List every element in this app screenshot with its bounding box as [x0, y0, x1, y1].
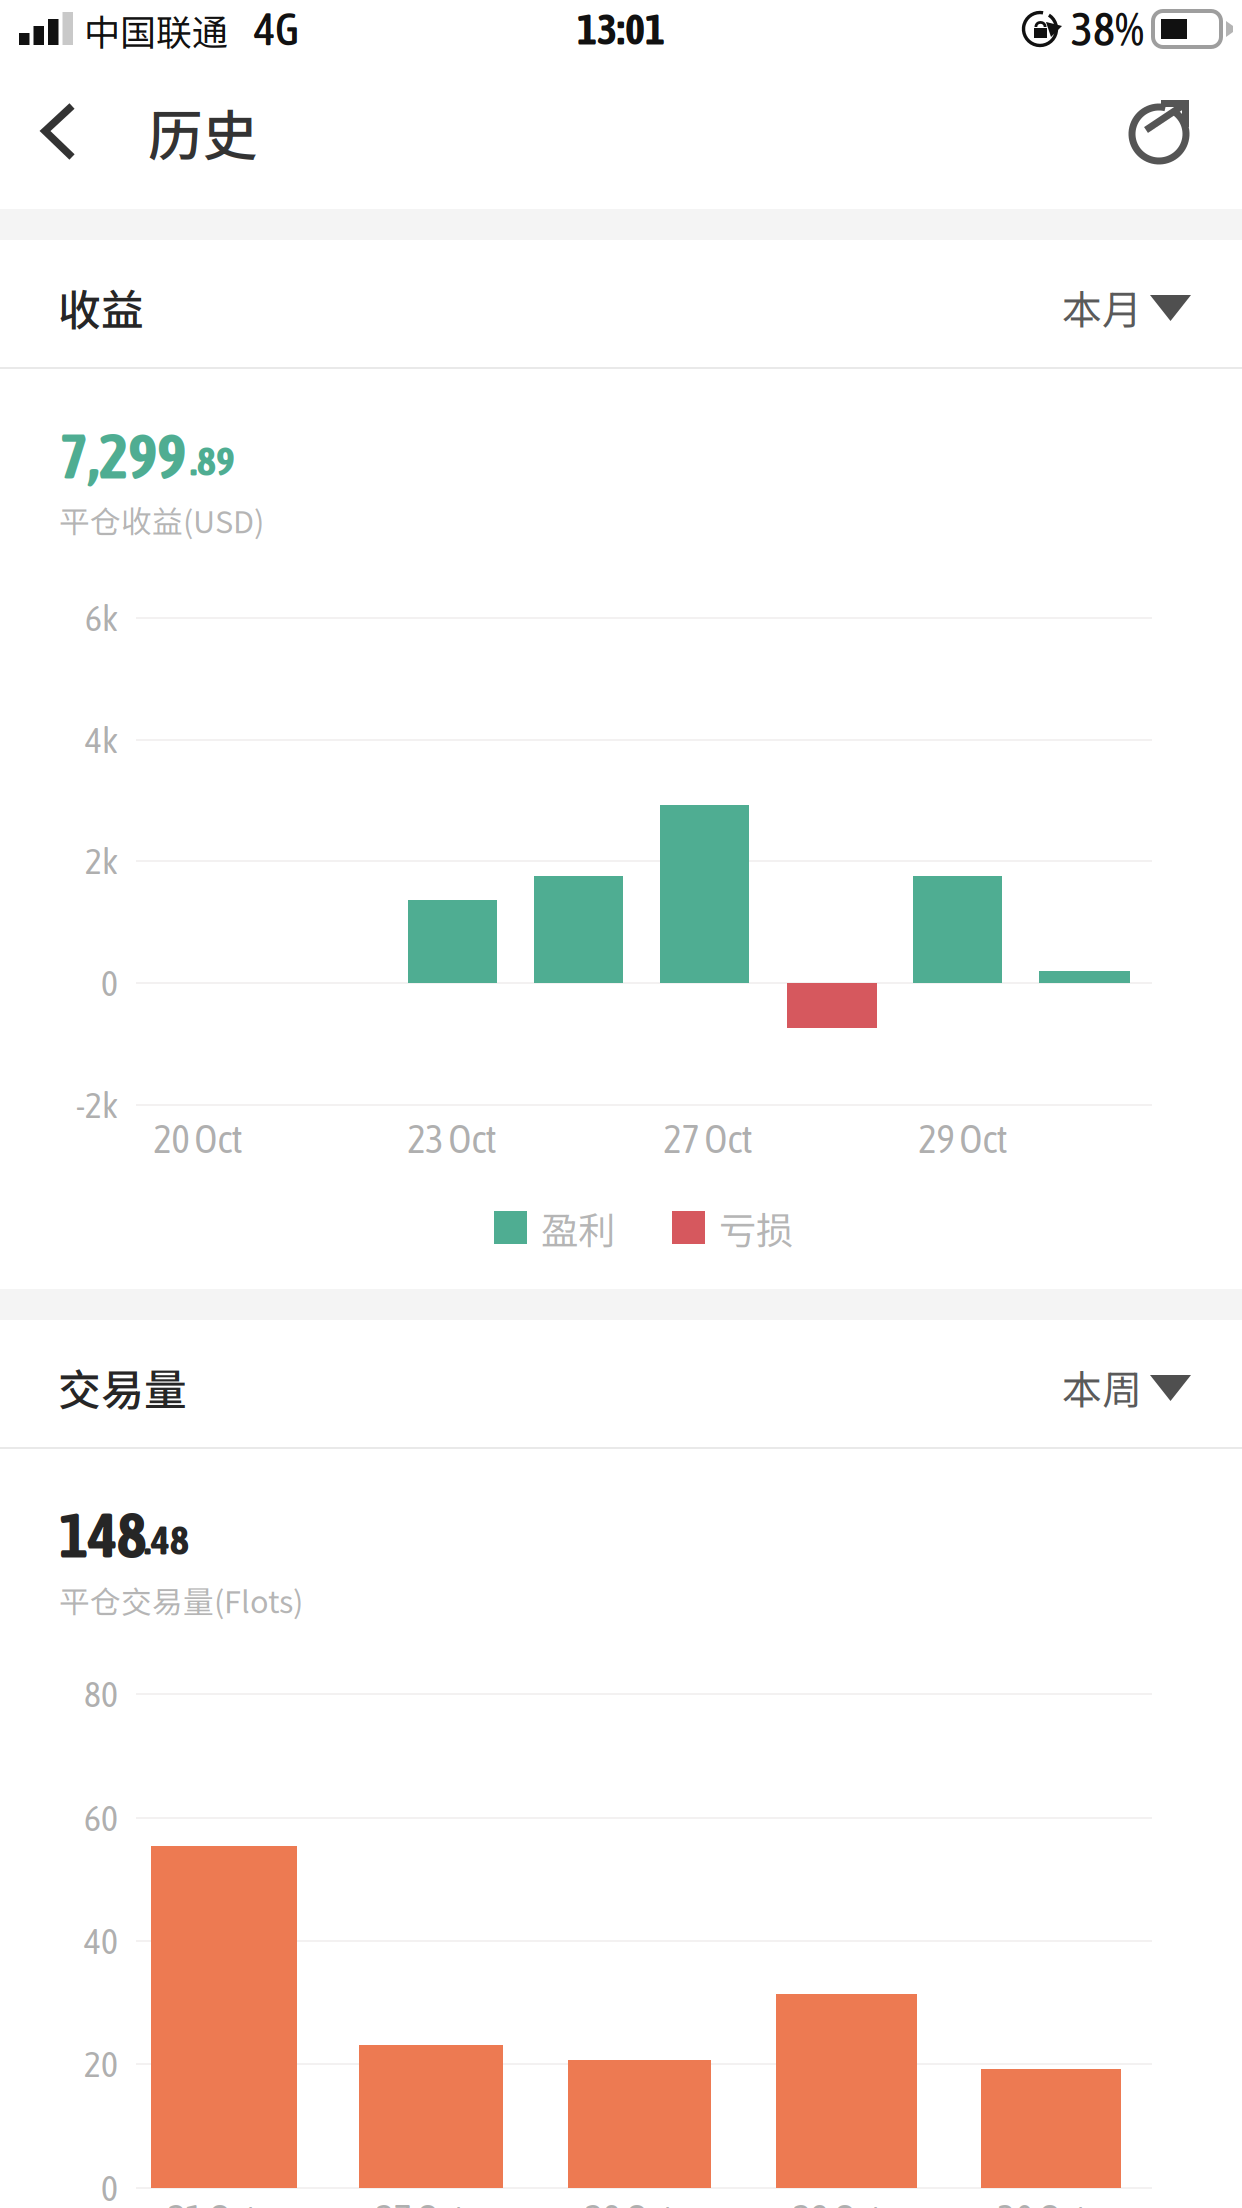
button[interactable]: Back	[0, 0, 1242, 2208]
staticText: 4k	[85, 719, 118, 761]
button[interactable]: Share	[0, 0, 1242, 2208]
staticText: 0	[101, 962, 118, 1004]
staticText: 0	[101, 2167, 118, 2208]
staticText: 27 Oct	[375, 2197, 464, 2208]
staticText: 本月	[1062, 278, 1142, 336]
staticText: 亏损	[719, 1201, 793, 1255]
button[interactable]: 本月	[0, 0, 1242, 2208]
staticText: 交易量	[58, 1356, 187, 1418]
staticText: 28 Oct	[584, 2197, 673, 2208]
staticText: 20 Oct	[153, 1117, 242, 1161]
staticText: 平仓交易量(Flots)	[59, 1578, 303, 1622]
staticText: 40	[84, 1920, 118, 1962]
staticText: 38%	[1071, 2, 1144, 56]
staticText: 80	[84, 1673, 118, 1715]
staticText: 7,299	[59, 420, 186, 492]
staticText: 30 Oct	[997, 2197, 1086, 2208]
staticText: 60	[84, 1797, 118, 1839]
staticText: 盈利	[541, 1201, 615, 1255]
staticText: 21 Oct	[167, 2197, 256, 2208]
button[interactable]: 本周	[0, 0, 1242, 2208]
staticText: .89	[190, 438, 235, 484]
staticText: 29 Oct	[792, 2197, 881, 2208]
staticText: 148	[59, 1499, 146, 1571]
staticText: 4G	[254, 3, 299, 55]
staticText: 13:01	[577, 5, 665, 53]
staticText: 历史	[148, 92, 258, 172]
staticText: 2k	[85, 840, 118, 882]
staticText: 中国联通	[84, 4, 228, 56]
staticText: 平仓收益(USD)	[59, 498, 264, 542]
staticText: -2k	[76, 1084, 118, 1126]
staticText: .48	[144, 1517, 189, 1563]
staticText: 6k	[85, 597, 118, 639]
staticText: 29 Oct	[918, 1117, 1007, 1161]
staticText: 本周	[1062, 1358, 1142, 1416]
staticText: 27 Oct	[663, 1117, 752, 1161]
staticText: 收益	[58, 276, 144, 338]
staticText: 20	[84, 2043, 118, 2085]
staticText: 23 Oct	[407, 1117, 496, 1161]
